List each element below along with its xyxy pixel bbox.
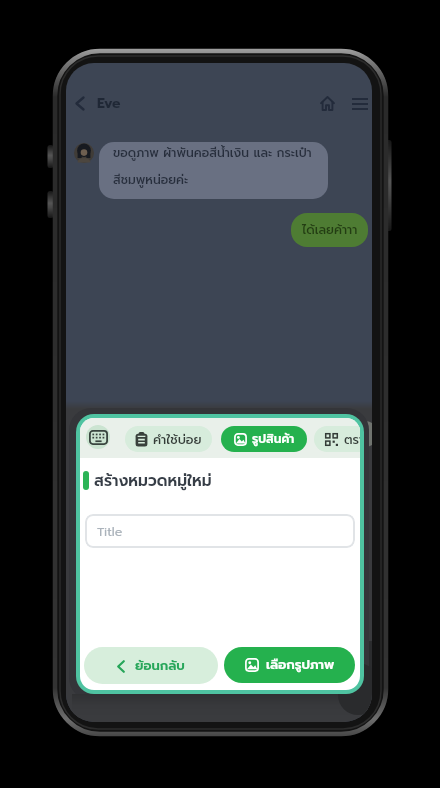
- staticText: ย้อนกลับ: [135, 656, 185, 676]
- staticText: สีชมพูหน่อยค่ะ: [113, 171, 189, 189]
- button[interactable]: คำใช้บ่อย: [125, 426, 212, 452]
- staticText: คำใช้บ่อย: [153, 430, 202, 449]
- staticText: ตร: [352, 425, 367, 443]
- button[interactable]: [352, 98, 368, 110]
- button[interactable]: [320, 96, 335, 111]
- staticText: สร้างหมวดหมู่ใหม่: [94, 469, 212, 492]
- button[interactable]: รูปสินค้า: [221, 426, 307, 452]
- button[interactable]: [75, 96, 85, 111]
- button[interactable]: ย้อนกลับ: [84, 647, 218, 684]
- button[interactable]: เลือกรูปภาพ: [224, 647, 355, 683]
- staticText: Title: [97, 522, 123, 541]
- staticText: รูปสินค้า: [252, 430, 295, 448]
- staticText: ได้เลยค้าาา: [302, 221, 358, 240]
- button[interactable]: ตรายาง: [314, 426, 360, 452]
- staticText: เลือกรูปภาพ: [266, 655, 335, 675]
- staticText: ตรายาง: [344, 430, 360, 449]
- staticText: Eve: [97, 93, 121, 114]
- button[interactable]: Title: [85, 514, 355, 548]
- staticText: ขอดูภาพ ผ้าพันคอสีน้ำเงิน และ กระเป๋า: [113, 144, 312, 162]
- button[interactable]: [86, 425, 110, 449]
